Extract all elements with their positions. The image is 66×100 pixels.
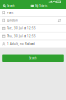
button[interactable]: Paris xyxy=(0,9,66,16)
button[interactable]: Search xyxy=(2,54,64,62)
button[interactable]: Thu, 30 Jul at 12:55 xyxy=(0,32,66,40)
button[interactable]: Search xyxy=(0,3,15,8)
staticText: Search xyxy=(7,4,15,8)
staticText: Thu, 30 Jul at 12:55 xyxy=(7,34,36,38)
staticText: Paris xyxy=(7,11,13,14)
staticText: My Tickets xyxy=(35,4,47,8)
staticText: 1 Adult, no Railcard xyxy=(7,42,35,46)
staticText: Tue, 30 Jul at 12:55 xyxy=(7,26,36,30)
staticText: London xyxy=(7,19,18,22)
staticText: Search xyxy=(29,56,37,60)
button[interactable]: My Tickets xyxy=(31,3,47,8)
button[interactable]: Tue, 30 Jul at 12:55 xyxy=(0,25,66,32)
button[interactable]: London xyxy=(0,17,66,24)
button[interactable]: 1 Adult, no Railcard xyxy=(0,40,66,48)
